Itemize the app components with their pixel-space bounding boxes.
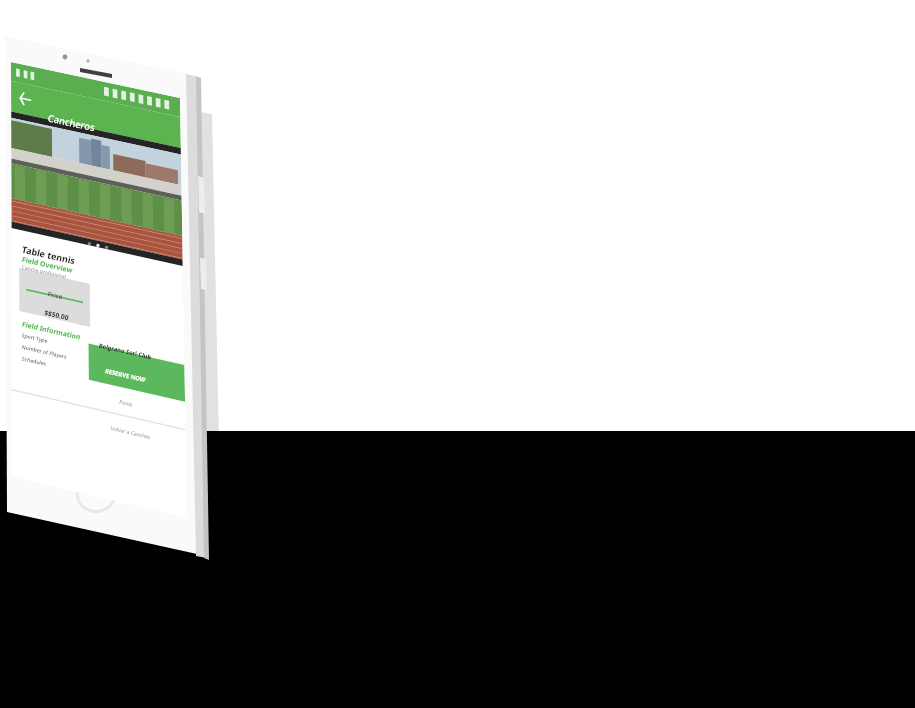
staticText: Field Information	[21, 319, 82, 342]
button[interactable]	[88, 360, 186, 400]
button[interactable]: Home	[72, 468, 118, 512]
staticText: Field Overview	[21, 255, 74, 276]
staticText: Number of Players	[21, 343, 68, 360]
staticText: Volver a Canchas	[110, 425, 151, 441]
staticText: Cancheros	[47, 112, 97, 134]
staticText: Belgrano Sori Club	[98, 341, 153, 361]
staticText: Cancha profesional	[21, 264, 67, 281]
staticText: Price	[47, 289, 63, 301]
staticText: Table tennis	[21, 243, 77, 266]
staticText: Ponle	[118, 399, 134, 409]
staticText: $$50.00	[43, 308, 70, 322]
staticText: Sport Type	[21, 331, 49, 344]
staticText: Schedules	[21, 354, 47, 367]
button[interactable]: Back	[4, 56, 32, 80]
button[interactable]	[14, 310, 80, 358]
staticText: RESERVE NOW	[104, 367, 146, 384]
